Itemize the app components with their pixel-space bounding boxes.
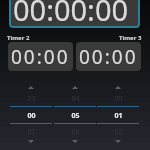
staticText: 01: [27, 127, 36, 135]
button[interactable]: Increase: [53, 80, 97, 148]
staticText: Timer 3: [119, 34, 142, 42]
staticText: 01: [114, 111, 123, 119]
staticText: 00: [114, 94, 123, 102]
staticText: Timer 2: [7, 34, 30, 42]
button[interactable]: 00:00:00: [9, 0, 140, 28]
staticText: 00:00: [79, 44, 138, 70]
button[interactable]: 00:00: [76, 42, 141, 71]
button[interactable]: Decrease: [64, 137, 86, 146]
staticText: 06: [71, 127, 80, 135]
staticText: 00:00:00: [13, 0, 129, 28]
staticText: 02: [114, 127, 123, 135]
button[interactable]: Increase: [9, 80, 53, 148]
button[interactable]: Increase: [20, 83, 42, 92]
staticText: 04: [71, 94, 80, 102]
staticText: 23: [27, 94, 36, 102]
button[interactable]: Increase: [96, 80, 140, 148]
button[interactable]: Decrease: [107, 137, 129, 146]
staticText: 00: [27, 111, 36, 119]
staticText: 05: [71, 111, 80, 119]
button[interactable]: Decrease: [20, 137, 42, 146]
button[interactable]: 00:00: [8, 42, 73, 71]
button[interactable]: Increase: [107, 83, 129, 92]
staticText: 00:00: [11, 44, 70, 70]
button[interactable]: Increase: [64, 83, 86, 92]
